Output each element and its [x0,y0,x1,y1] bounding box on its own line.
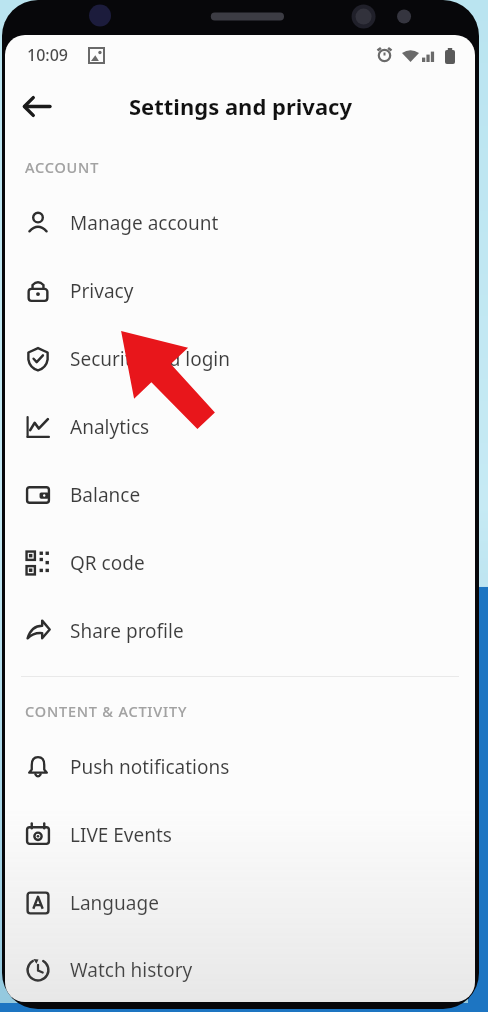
staticText: Manage account [70,210,219,236]
staticText: Push notifications [70,754,230,780]
staticText: QR code [70,550,145,576]
staticText: LIVE Events [70,822,172,848]
staticText: 10:09 [27,44,68,66]
button[interactable]: LIVE Events [5,801,475,869]
staticText: Balance [70,482,141,508]
staticText: Share profile [70,618,184,644]
staticText: Privacy [70,278,134,304]
staticText: Watch history [70,957,193,983]
staticText: ACCOUNT [25,157,100,177]
staticText: Analytics [70,414,150,440]
staticText: Language [70,890,159,916]
button[interactable]: Language [5,869,475,937]
button[interactable]: Manage account [5,189,475,257]
staticText: Security and login [70,346,230,372]
button[interactable]: QR code [5,529,475,597]
button[interactable]: Analytics [5,393,475,461]
button[interactable]: Watch history [5,937,475,1002]
staticText: Settings and privacy [129,91,352,121]
button[interactable]: Back [11,81,61,131]
button[interactable]: Push notifications [5,733,475,801]
button[interactable]: Security and login [5,325,475,393]
button[interactable]: Share profile [5,597,475,665]
button[interactable]: Privacy [5,257,475,325]
button[interactable]: Balance [5,461,475,529]
staticText: CONTENT & ACTIVITY [25,701,188,721]
